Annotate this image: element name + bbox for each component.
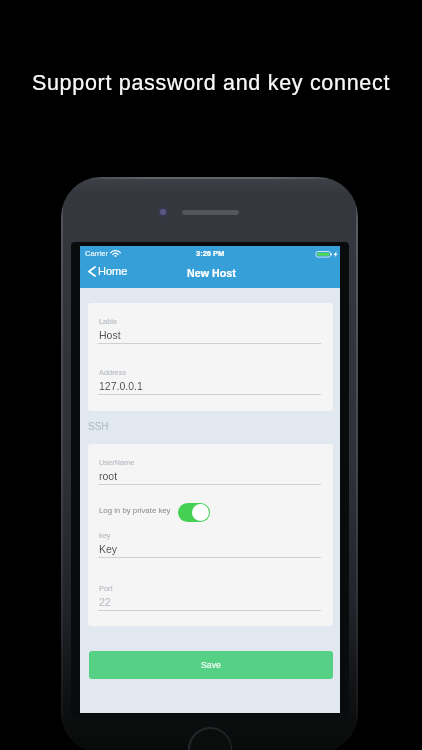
button[interactable]: Save [89,651,333,679]
staticText: Log in by private key [99,506,171,515]
staticText: SSH [88,421,109,432]
staticText: New Host [187,267,236,279]
staticText: Key [99,543,118,555]
button[interactable]: Address [88,354,333,405]
staticText: Lable [99,317,118,325]
staticText: Port [99,584,113,592]
other: Home button [188,727,232,750]
button[interactable]: Port [88,570,333,621]
staticText: Address [99,368,127,376]
button[interactable]: Log in by private key [178,503,210,522]
button[interactable]: Home [81,263,136,281]
button[interactable]: key [88,517,333,568]
button[interactable]: Lable [88,303,333,354]
staticText: 3:26 PM [196,249,225,257]
staticText: root [99,470,118,482]
staticText: Home [98,265,128,277]
staticText: Host [99,329,121,341]
staticText: 22 [99,596,111,608]
staticText: 127.0.0.1 [99,380,143,392]
staticText: key [99,531,111,539]
staticText: Support password and key connect [0,71,422,95]
staticText: Carrier [85,249,108,257]
staticText: Save [201,660,221,670]
staticText: UserName [99,458,135,466]
other: Wi-Fi [111,250,120,257]
other: Battery charging [316,249,338,259]
button[interactable]: Log in by private key [88,501,333,527]
button[interactable]: UserName [88,444,333,495]
